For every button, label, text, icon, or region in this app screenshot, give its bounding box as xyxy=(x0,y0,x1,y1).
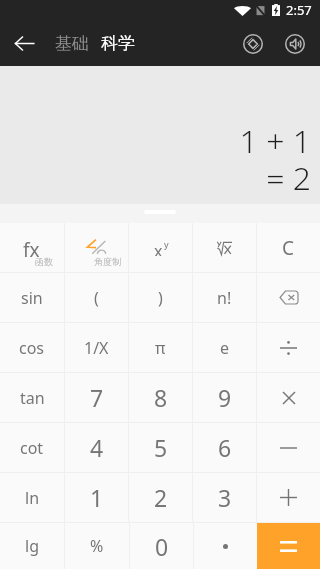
staticText: x xyxy=(154,240,163,256)
staticText: 8 xyxy=(154,382,168,413)
staticText: cos xyxy=(19,337,45,359)
button[interactable]: 0 xyxy=(130,523,193,569)
button[interactable]: % xyxy=(65,523,129,569)
staticText: 1 xyxy=(90,482,104,513)
staticText: e xyxy=(220,337,230,359)
staticText: π xyxy=(155,337,166,359)
button[interactable]: 2 xyxy=(129,473,192,522)
staticText: 5 xyxy=(154,432,168,463)
button[interactable]: cos xyxy=(0,323,64,372)
button[interactable]: y-th root of x xyxy=(193,223,256,272)
button[interactable]: 8 xyxy=(129,373,192,422)
staticText: 6 xyxy=(218,432,232,463)
button[interactable]: 基础 xyxy=(52,25,92,62)
button[interactable]: Delete xyxy=(257,273,320,322)
button[interactable]: sin xyxy=(0,273,64,322)
staticText: 3 xyxy=(218,482,232,513)
staticText: ( xyxy=(94,287,99,309)
button[interactable]: Sound xyxy=(275,24,315,64)
button[interactable]: Decimal point xyxy=(194,523,257,569)
staticText: fx xyxy=(23,237,40,263)
button[interactable]: ( xyxy=(65,273,128,322)
button[interactable]: Equals xyxy=(257,523,320,569)
staticText: cot xyxy=(20,437,44,459)
button[interactable]: tan xyxy=(0,373,64,422)
staticText: 2:57 xyxy=(286,1,312,19)
staticText: 函数 xyxy=(35,256,53,267)
button[interactable]: 4 xyxy=(65,423,128,472)
staticText: 9 xyxy=(218,382,232,413)
staticText: n! xyxy=(217,287,232,309)
button[interactable]: x to the power y xyxy=(129,223,192,272)
button[interactable]: lg xyxy=(0,523,64,569)
staticText: 2 xyxy=(154,482,168,513)
button[interactable]: Angle unit xyxy=(65,223,128,272)
staticText: % xyxy=(90,535,104,557)
button[interactable]: Divide xyxy=(257,323,320,372)
button[interactable]: 1 xyxy=(65,473,128,522)
staticText: sin xyxy=(21,287,43,309)
staticText: 0 xyxy=(155,531,169,562)
button[interactable]: 5 xyxy=(129,423,192,472)
button[interactable]: 6 xyxy=(193,423,256,472)
button[interactable]: Unit converter xyxy=(233,24,273,64)
button[interactable]: Multiply xyxy=(257,373,320,422)
staticText: tan xyxy=(20,387,45,409)
staticText: ln xyxy=(25,487,40,509)
staticText: 1/X xyxy=(84,337,109,359)
button[interactable]: 3 xyxy=(193,473,256,522)
button[interactable]: n! xyxy=(193,273,256,322)
button[interactable]: 7 xyxy=(65,373,128,422)
staticText: 基础 xyxy=(55,33,89,54)
button[interactable]: π xyxy=(129,323,192,372)
staticText: y xyxy=(164,238,169,250)
staticText: ) xyxy=(158,287,163,309)
staticText: C xyxy=(282,235,295,261)
button[interactable]: 9 xyxy=(193,373,256,422)
button[interactable]: fx xyxy=(0,223,64,272)
button[interactable]: cot xyxy=(0,423,64,472)
staticText: lg xyxy=(25,535,39,557)
button[interactable]: e xyxy=(193,323,256,372)
button[interactable]: Back xyxy=(0,20,48,66)
button[interactable]: ln xyxy=(0,473,64,522)
button[interactable]: C xyxy=(257,223,320,272)
button[interactable]: ) xyxy=(129,273,192,322)
staticText: 4 xyxy=(90,432,104,463)
button[interactable]: 科学 xyxy=(98,25,138,62)
staticText: 1 + 1 = 2 xyxy=(239,119,311,199)
button[interactable]: 1/X xyxy=(65,323,128,372)
staticText: 角度制 xyxy=(94,256,121,267)
staticText: 科学 xyxy=(101,33,135,54)
button[interactable]: Minus xyxy=(257,423,320,472)
staticText: 7 xyxy=(90,382,104,413)
button[interactable]: Plus xyxy=(257,473,320,522)
